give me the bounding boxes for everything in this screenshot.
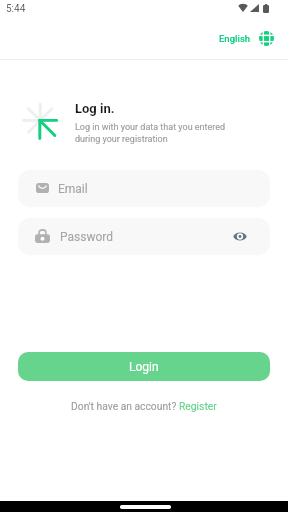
- button[interactable]: Email: [18, 170, 270, 207]
- staticText: Password: [60, 230, 114, 244]
- staticText: during your registration: [75, 134, 168, 145]
- button[interactable]: Login: [18, 352, 270, 381]
- staticText: Login: [129, 360, 159, 374]
- staticText: Log in.: [75, 101, 115, 116]
- button[interactable]: English: [214, 25, 281, 51]
- staticText: Email: [58, 182, 88, 196]
- staticText: English: [219, 33, 251, 44]
- staticText: Don't have an account?: [71, 400, 179, 412]
- staticText: 5:44: [6, 3, 26, 15]
- other: Change language: [259, 31, 274, 46]
- other: Show password: [233, 231, 247, 242]
- staticText: Register: [179, 400, 217, 412]
- button[interactable]: Don't have an account?: [65, 397, 223, 415]
- staticText: Log in with your data that you entered: [75, 122, 226, 133]
- button[interactable]: Password: [18, 218, 270, 255]
